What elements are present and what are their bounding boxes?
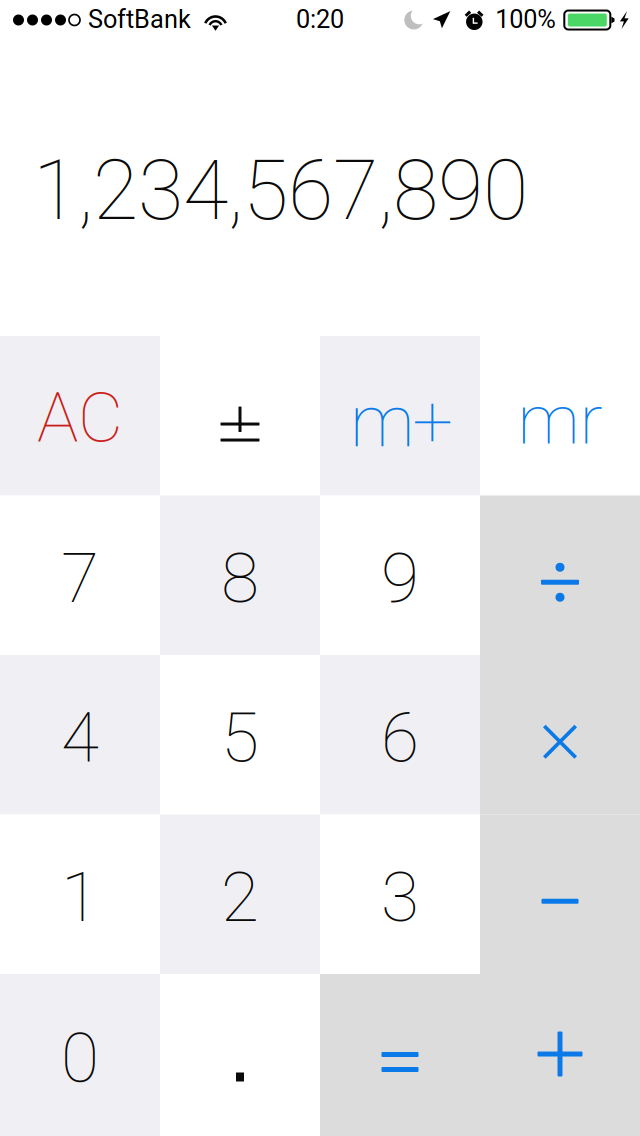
button[interactable]: 0 [0,974,160,1136]
button[interactable]: 3 [320,814,480,974]
button[interactable]: Minus [480,814,640,974]
staticText: 2 [221,848,259,950]
button[interactable]: Equals [320,974,480,1136]
button[interactable]: Plus [480,974,640,1136]
staticText: mr [517,371,602,473]
staticText: AC [37,369,123,471]
button[interactable]: 2 [160,814,320,974]
staticText: 7 [61,529,99,631]
button[interactable]: Multiply [480,655,640,814]
staticText: 8 [221,529,259,631]
staticText: 1,234,567,890 [33,132,528,254]
button[interactable]: mr [480,336,640,495]
staticText: 6 [381,689,419,791]
staticText: 5 [221,689,259,791]
button[interactable]: 6 [320,655,480,814]
staticText: 0 [61,1009,99,1111]
button[interactable]: m+ [320,336,480,495]
button[interactable]: 8 [160,495,320,655]
button[interactable]: Divide [480,495,640,655]
staticText: 3 [381,848,419,950]
staticText: 100% [495,1,556,39]
staticText: 0:20 [296,1,344,39]
button[interactable]: Plus minus [160,336,320,495]
staticText: 1 [61,848,99,950]
staticText: SoftBank [88,1,191,39]
staticText: 9 [381,529,419,631]
button[interactable]: 1 [0,814,160,974]
staticText: m+ [350,371,450,477]
button[interactable]: Decimal point [160,974,320,1136]
button[interactable]: AC [0,336,160,495]
staticText: 4 [61,689,99,791]
button[interactable]: 5 [160,655,320,814]
button[interactable]: 7 [0,495,160,655]
button[interactable]: 4 [0,655,160,814]
button[interactable]: 9 [320,495,480,655]
